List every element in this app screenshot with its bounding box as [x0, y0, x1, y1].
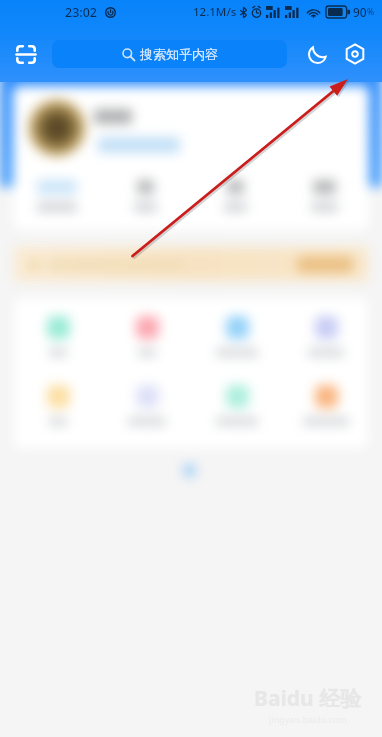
button[interactable]: Scan QR code	[0, 32, 52, 76]
button[interactable]	[113, 385, 181, 426]
staticText: 23:02	[65, 4, 98, 21]
staticText: Baidu 经验	[254, 684, 362, 713]
button[interactable]	[24, 385, 92, 426]
staticText: 12.1M/s	[193, 4, 237, 20]
staticText: 90	[353, 4, 367, 20]
button[interactable]	[13, 86, 369, 230]
button[interactable]: 搜索知乎内容	[52, 40, 287, 68]
button[interactable]: Night mode	[299, 36, 335, 72]
button[interactable]	[291, 180, 357, 212]
button[interactable]	[24, 180, 90, 212]
button[interactable]: Settings	[336, 35, 374, 73]
button[interactable]	[14, 247, 368, 281]
button[interactable]	[112, 180, 178, 212]
button[interactable]	[202, 180, 268, 212]
button[interactable]	[292, 316, 360, 357]
button[interactable]	[203, 385, 271, 426]
button[interactable]	[24, 316, 92, 357]
button[interactable]	[113, 316, 181, 357]
button[interactable]	[203, 316, 271, 357]
button[interactable]	[292, 385, 360, 426]
staticText: 搜索知乎内容	[140, 46, 218, 62]
staticText: %	[367, 6, 375, 18]
